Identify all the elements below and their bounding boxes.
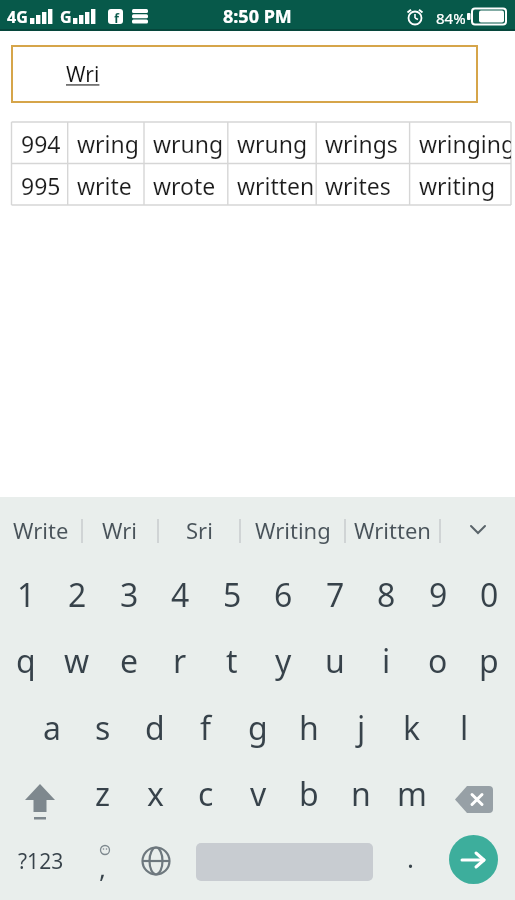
button[interactable]: written [228,164,316,206]
staticText: Write [13,515,69,545]
button[interactable]: ?123 [15,828,67,894]
button[interactable]: wrings [316,122,409,164]
button[interactable]: Sri [158,500,240,560]
staticText: 5 [223,573,242,617]
button[interactable]: wrote [144,164,228,206]
button[interactable]: . [390,828,430,894]
button[interactable]: writing [410,164,511,206]
staticText: 3 [120,573,139,617]
staticText: d [145,706,165,750]
button[interactable] [130,828,182,894]
staticText: f [114,9,120,24]
staticText: w [64,639,90,683]
staticText: z [95,772,111,816]
button[interactable]: r [154,628,206,694]
button[interactable]: 4 [154,562,206,628]
staticText: Wri [66,60,100,89]
button[interactable]: c [180,761,232,827]
button[interactable]: 2 [51,562,103,628]
button[interactable]: 6 [257,562,309,628]
staticText: 7 [326,573,345,617]
staticText: 1 [17,573,36,617]
staticText: wring [77,128,139,159]
button[interactable]: d [129,695,181,761]
button[interactable] [14,761,66,827]
button[interactable]: wrung [144,122,228,164]
button[interactable] [448,761,500,827]
button[interactable]: y [257,628,309,694]
staticText: g [248,706,268,750]
staticText: Written [354,515,431,545]
button[interactable]: w [51,628,103,694]
button[interactable]: b [283,761,335,827]
staticText: G [60,6,72,28]
staticText: l [460,706,469,750]
button[interactable]: wringing [410,122,511,164]
staticText: u [325,639,345,683]
button[interactable]: m [386,761,438,827]
staticText: 8 [377,573,396,617]
button[interactable]: o [412,628,464,694]
button[interactable]: u [309,628,361,694]
button[interactable]: Write [0,500,82,560]
button[interactable]: a [26,695,78,761]
staticText: v [250,772,267,816]
staticText: 994 [21,128,61,159]
staticText: f [200,706,212,750]
button[interactable]: Wri [82,500,158,560]
button[interactable]: e [103,628,155,694]
button[interactable]: Wri [11,45,478,103]
button[interactable]: k [386,695,438,761]
button[interactable]: x [129,761,181,827]
button[interactable]: , [77,828,129,894]
button[interactable]: 5 [206,562,258,628]
staticText: wrings [325,128,398,159]
button[interactable]: wring [68,122,144,164]
button[interactable]: n [335,761,387,827]
button[interactable]: 8 [360,562,412,628]
staticText: y [275,639,292,683]
button[interactable]: writes [316,164,409,206]
staticText: r [173,639,187,683]
button[interactable]: 0 [463,562,515,628]
button[interactable] [449,835,498,884]
button[interactable]: 7 [309,562,361,628]
button[interactable]: Written [345,500,440,560]
button[interactable]: i [360,628,412,694]
button[interactable]: Writing [240,500,345,560]
button[interactable]: t [206,628,258,694]
staticText: a [43,706,61,750]
staticText: q [16,639,36,683]
staticText: written [237,170,315,201]
button[interactable]: s [77,695,129,761]
staticText: Wri [102,515,138,545]
staticText: n [351,772,371,816]
button[interactable]: f [180,695,232,761]
staticText: 9 [429,573,448,617]
button[interactable]: 1 [0,562,52,628]
staticText: ?123 [18,847,64,876]
staticText: 8:50 PM [223,4,292,29]
button[interactable]: p [463,628,515,694]
button[interactable]: 3 [103,562,155,628]
button[interactable]: 995 [12,164,68,206]
button[interactable]: v [232,761,284,827]
button[interactable]: q [0,628,52,694]
staticText: writing [419,170,496,201]
staticText: c [198,772,214,816]
button[interactable]: write [68,164,144,206]
staticText: 2 [68,573,87,617]
button[interactable]: j [335,695,387,761]
button[interactable]: z [77,761,129,827]
staticText: wrung [153,128,224,159]
staticText: j [357,706,366,750]
button[interactable]: 994 [12,122,68,164]
staticText: wrote [153,170,216,201]
button[interactable]: g [232,695,284,761]
button[interactable]: wrung [228,122,316,164]
button[interactable]: h [283,695,335,761]
button[interactable]: 9 [412,562,464,628]
button[interactable]: l [438,695,490,761]
button[interactable] [440,500,515,560]
